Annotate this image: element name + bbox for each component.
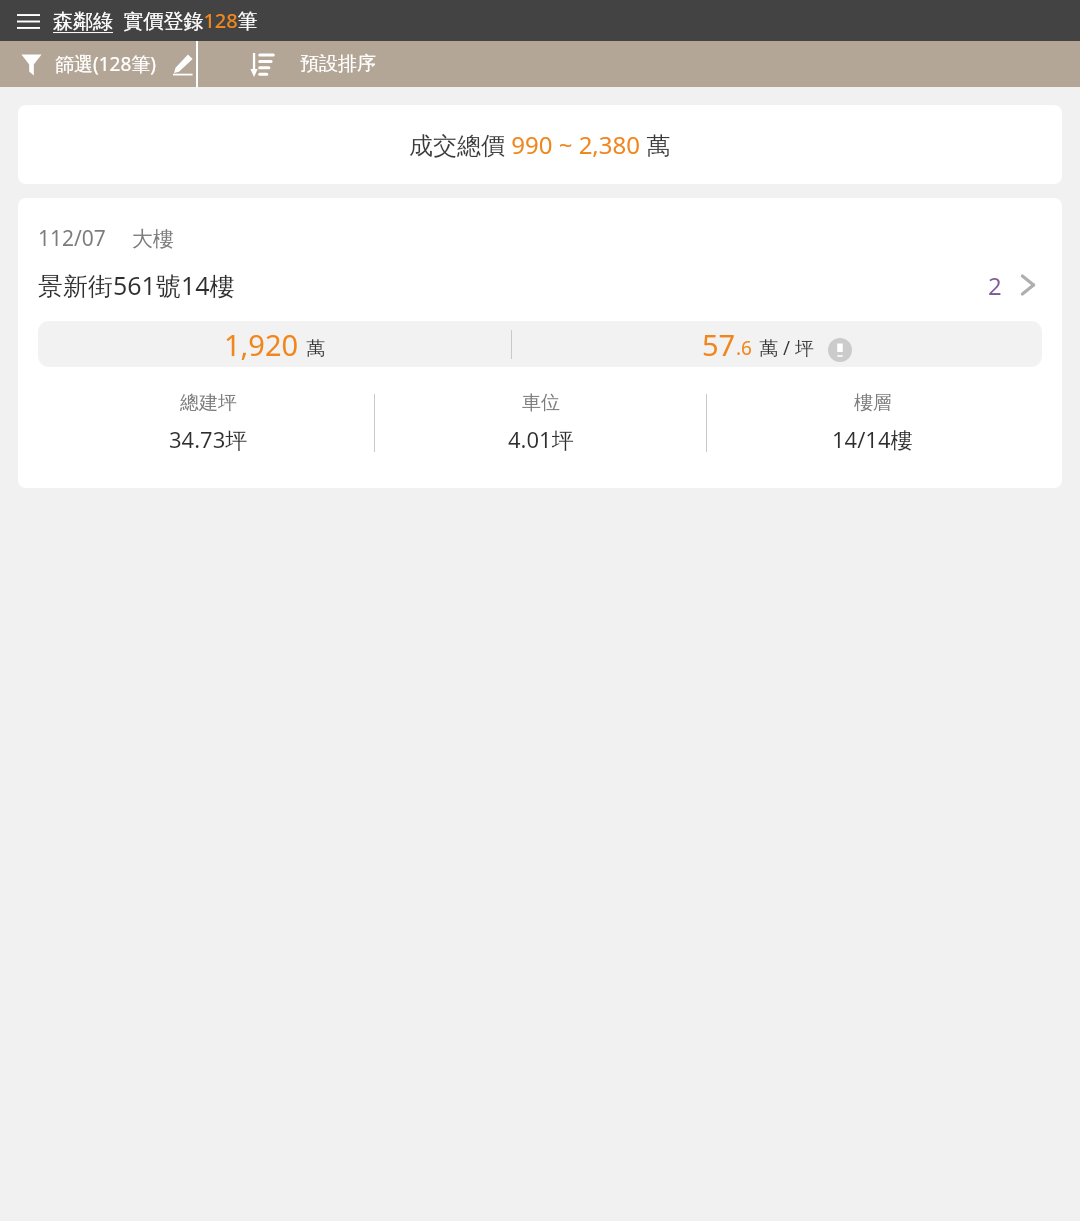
staticText: 大樓 — [132, 226, 174, 252]
staticText: 萬 / 坪 — [759, 335, 814, 361]
staticText: 萬 — [306, 337, 325, 361]
button[interactable]: 篩選(128筆) — [0, 41, 196, 87]
button[interactable]: 森鄰綠 實價登錄128筆 — [53, 7, 258, 34]
staticText: 總建坪 — [180, 391, 237, 415]
staticText: 112/07 — [38, 224, 106, 253]
staticText: .6 — [736, 335, 752, 361]
staticText: 景新街561號14樓 — [38, 268, 235, 302]
staticText: 成交總價 990 ~ 2,380 萬 — [409, 128, 671, 161]
staticText: 預設排序 — [300, 52, 376, 76]
button[interactable]: 成交總價 990 ~ 2,380 萬 — [18, 105, 1062, 184]
staticText: 樓層 — [854, 391, 892, 415]
button[interactable]: 車位 — [375, 391, 706, 454]
button[interactable]: 總建坪 — [42, 391, 374, 454]
button[interactable]: 樓層 — [707, 391, 1038, 454]
staticText: 森鄰綠 實價登錄128筆 — [53, 7, 258, 34]
staticText: 2 — [988, 269, 1002, 302]
staticText: 14/14樓 — [832, 424, 913, 454]
staticText: 篩選(128筆) — [55, 51, 157, 77]
staticText: 1,920 — [224, 325, 299, 364]
button[interactable]: Edit filter — [169, 50, 196, 78]
staticText: 57 — [702, 325, 736, 364]
button[interactable]: 預設排序 — [198, 41, 1080, 87]
staticText: 34.73坪 — [169, 424, 248, 454]
button[interactable]: Open detail — [1018, 271, 1038, 299]
staticText: 車位 — [522, 391, 560, 415]
button[interactable]: Price info — [827, 338, 853, 364]
button[interactable]: 112/07 — [18, 198, 1062, 488]
button[interactable]: Menu — [12, 5, 44, 37]
staticText: 4.01坪 — [508, 424, 574, 454]
